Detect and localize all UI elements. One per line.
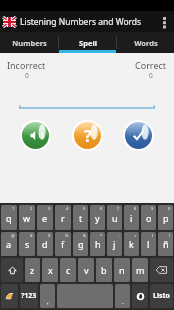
button[interactable]: @ — [1, 232, 17, 256]
button[interactable]: Check answer — [123, 120, 154, 151]
staticText: + — [134, 233, 137, 238]
button[interactable]: . — [115, 284, 130, 308]
button[interactable]: Shift — [1, 258, 23, 282]
staticText: i — [130, 212, 133, 224]
staticText: Spell — [79, 38, 97, 48]
staticText: 0 — [149, 71, 153, 80]
button[interactable]: 0 — [158, 205, 173, 230]
button[interactable]: 8 — [124, 205, 139, 230]
button[interactable]: Play sound — [20, 120, 51, 151]
button[interactable]: $ — [37, 232, 53, 256]
staticText: # — [30, 233, 33, 238]
staticText: 8 — [134, 206, 137, 211]
staticText: Listo — [153, 291, 170, 301]
button[interactable]: Done — [150, 284, 173, 308]
staticText: ? — [84, 125, 92, 147]
staticText: h — [95, 238, 101, 250]
button[interactable]: # — [19, 232, 35, 256]
button[interactable]: 6 — [90, 205, 105, 230]
button[interactable]: Delete — [150, 258, 173, 282]
staticText: 0 — [25, 71, 29, 80]
staticText: 2 — [30, 206, 33, 211]
staticText: p — [163, 212, 169, 224]
button[interactable]: x — [42, 258, 58, 282]
button[interactable]: Symbols — [20, 284, 38, 308]
staticText: m — [136, 264, 145, 276]
button[interactable]: z — [25, 258, 40, 282]
staticText: b — [101, 264, 107, 276]
staticText: e — [42, 212, 48, 224]
staticText: 5 — [83, 206, 86, 211]
button[interactable]: 2 — [19, 205, 35, 230]
button[interactable]: 9 — [141, 205, 156, 230]
staticText: w — [23, 212, 31, 224]
staticText: . — [122, 298, 124, 306]
staticText: n — [119, 264, 125, 276]
staticText: z — [30, 264, 35, 276]
button[interactable]: More options — [157, 12, 171, 32]
staticText: o — [146, 212, 152, 224]
staticText: j — [113, 238, 116, 250]
button[interactable]: Emoji — [132, 284, 148, 308]
staticText: u — [112, 212, 118, 224]
staticText: * — [100, 233, 103, 238]
staticText: $ — [48, 233, 51, 238]
button[interactable]: c — [60, 258, 76, 282]
staticText: s — [25, 238, 30, 250]
staticText: 9 — [151, 206, 154, 211]
button[interactable]: 1 — [1, 205, 17, 230]
button[interactable]: Spell — [59, 32, 116, 53]
button[interactable]: 4 — [55, 205, 71, 230]
staticText: a — [6, 238, 12, 250]
button[interactable]: , — [40, 284, 55, 308]
button[interactable]: - — [107, 232, 122, 256]
button[interactable]: 7 — [107, 205, 122, 230]
button[interactable]: 3 — [37, 205, 53, 230]
staticText: @ — [11, 233, 15, 238]
button[interactable]: & — [73, 232, 88, 256]
staticText: ?123 — [21, 291, 37, 301]
staticText: ( — [152, 233, 154, 238]
staticText: r — [61, 212, 65, 224]
staticText: & — [83, 233, 86, 238]
button[interactable]: ) — [158, 232, 173, 256]
staticText: f — [61, 238, 65, 250]
staticText: - — [118, 233, 120, 238]
staticText: k — [129, 238, 134, 250]
staticText: Incorrect — [7, 59, 46, 71]
staticText: 3 — [48, 206, 51, 211]
staticText: 7 — [117, 206, 120, 211]
button[interactable]: ( — [141, 232, 156, 256]
button[interactable] — [19, 98, 155, 109]
button[interactable]: 5 — [73, 205, 88, 230]
button[interactable]: v — [78, 258, 94, 282]
button[interactable]: Words — [117, 32, 174, 53]
button[interactable]: Hint — [72, 120, 103, 151]
staticText: d — [42, 238, 48, 250]
button[interactable]: m — [132, 258, 148, 282]
staticText: 0 — [168, 206, 171, 211]
staticText: g — [78, 238, 84, 250]
staticText: y — [95, 212, 100, 224]
staticText: l — [147, 238, 150, 250]
staticText: x — [48, 264, 53, 276]
staticText: Listening Numbers and Words — [20, 16, 157, 28]
staticText: % — [65, 233, 69, 238]
button[interactable]: b — [96, 258, 112, 282]
button[interactable]: % — [55, 232, 71, 256]
button[interactable]: n — [114, 258, 130, 282]
button[interactable]: Numbers — [0, 32, 58, 53]
staticText: t — [79, 212, 83, 224]
staticText: , — [47, 298, 49, 306]
staticText: q — [6, 212, 12, 224]
staticText: ) — [169, 233, 171, 238]
staticText: Words — [134, 38, 158, 48]
staticText: c — [66, 264, 71, 276]
staticText: 4 — [66, 206, 69, 211]
button[interactable]: Voice input — [1, 284, 18, 308]
staticText: Correct — [135, 59, 167, 71]
button[interactable]: * — [90, 232, 105, 256]
button[interactable]: + — [124, 232, 139, 256]
staticText: 1 — [12, 206, 15, 211]
